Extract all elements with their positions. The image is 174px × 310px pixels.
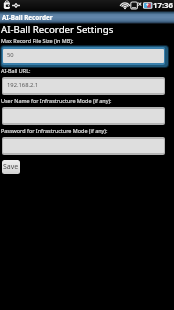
staticText: AI-Ball Recorder bbox=[2, 13, 53, 22]
staticText: AI-Ball Recorder Settings bbox=[1, 23, 114, 36]
staticText: Save bbox=[3, 162, 19, 172]
staticText: 50 bbox=[7, 51, 14, 59]
button[interactable]: Save bbox=[2, 160, 20, 174]
staticText: 17:36 bbox=[153, 0, 174, 11]
button[interactable]: AI-Ball URL bbox=[3, 79, 164, 93]
staticText: Password for Infrastructure Mode (if any… bbox=[1, 127, 108, 134]
button[interactable]: Max record file size in MB bbox=[3, 49, 164, 63]
staticText: Max Record File Size (in MB): bbox=[1, 37, 74, 44]
staticText: 192.168.2.1 bbox=[7, 81, 39, 89]
staticText: AI-Ball URL: bbox=[1, 67, 31, 74]
staticText: User Name for Infrastructure Mode (if an… bbox=[1, 97, 112, 104]
